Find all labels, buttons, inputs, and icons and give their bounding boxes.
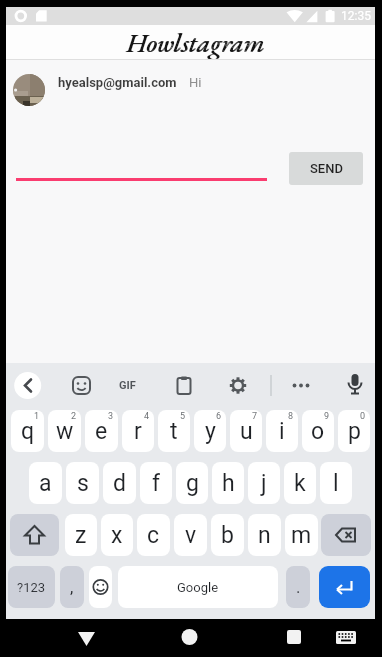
staticText: n	[258, 522, 271, 549]
button[interactable]: q	[11, 410, 44, 452]
staticText: 6	[216, 411, 222, 422]
button[interactable]: c	[137, 514, 170, 556]
staticText: hyealsp@gmail.com	[58, 75, 177, 90]
button[interactable]: y	[194, 410, 226, 452]
button[interactable]: t	[158, 410, 190, 452]
staticText: 3	[108, 411, 114, 422]
staticText: g	[186, 470, 199, 497]
staticText: d	[113, 470, 126, 497]
staticText: 5	[180, 411, 186, 422]
button[interactable]: ?123	[8, 566, 55, 608]
staticText: 1	[34, 411, 40, 422]
staticText: Howlstagram	[127, 25, 266, 60]
button[interactable]: SEND	[289, 152, 363, 185]
button[interactable]: r	[122, 410, 154, 452]
staticText: v	[185, 522, 197, 549]
staticText: x	[111, 522, 123, 549]
button[interactable]: l	[320, 462, 352, 504]
staticText: 4	[144, 411, 150, 422]
button[interactable]	[89, 566, 112, 608]
button[interactable]: w	[48, 410, 81, 452]
button[interactable]: Google	[118, 566, 278, 608]
button[interactable]: g	[176, 462, 208, 504]
button[interactable]: a	[29, 462, 62, 504]
staticText: 8	[288, 411, 294, 422]
button[interactable]	[170, 372, 197, 399]
staticText: 2	[71, 411, 77, 422]
button[interactable]	[321, 514, 371, 556]
staticText: p	[348, 418, 361, 445]
staticText: 9	[324, 411, 330, 422]
button[interactable]	[341, 372, 368, 399]
button[interactable]	[10, 514, 59, 556]
staticText: f	[152, 470, 160, 497]
button[interactable]	[13, 74, 45, 106]
button[interactable]: v	[174, 514, 207, 556]
staticText: m	[291, 522, 312, 549]
staticText: SEND	[310, 161, 343, 176]
button[interactable]: b	[211, 514, 244, 556]
button[interactable]: hyealsp@gmail.com	[58, 75, 202, 90]
button[interactable]: j	[248, 462, 280, 504]
button[interactable]: d	[103, 462, 136, 504]
staticText: c	[147, 522, 160, 549]
button[interactable]: o	[302, 410, 334, 452]
button[interactable]: k	[284, 462, 316, 504]
button[interactable]	[287, 372, 314, 399]
staticText: q	[21, 418, 35, 445]
staticText: GIF	[119, 379, 136, 392]
staticText: 7	[252, 411, 258, 422]
staticText: ?123	[17, 580, 46, 595]
button[interactable]: p	[338, 410, 370, 452]
button[interactable]	[71, 631, 103, 653]
staticText: t	[170, 418, 178, 445]
button[interactable]: e	[85, 410, 118, 452]
staticText: l	[333, 470, 339, 497]
button[interactable]: i	[266, 410, 298, 452]
staticText: i	[279, 418, 285, 445]
button[interactable]: .	[286, 566, 310, 608]
button[interactable]: x	[101, 514, 133, 556]
button[interactable]	[224, 372, 251, 399]
staticText: 12:35	[341, 9, 371, 23]
staticText: y	[205, 418, 216, 445]
staticText: s	[77, 470, 89, 497]
staticText: w	[56, 418, 74, 445]
button[interactable]	[14, 372, 41, 399]
button[interactable]	[334, 625, 360, 651]
button[interactable]	[68, 372, 95, 399]
staticText: b	[221, 522, 234, 549]
staticText: Google	[177, 580, 219, 595]
button[interactable]: n	[248, 514, 281, 556]
staticText: ,	[70, 577, 74, 597]
button[interactable]: z	[65, 514, 97, 556]
staticText: o	[311, 418, 325, 445]
staticText: e	[95, 418, 108, 445]
staticText: Hi	[189, 75, 202, 90]
staticText: r	[134, 418, 142, 445]
button[interactable]: h	[212, 462, 244, 504]
button[interactable]	[319, 566, 370, 608]
staticText: z	[75, 522, 87, 549]
staticText: a	[39, 470, 52, 497]
staticText: k	[294, 470, 306, 497]
button[interactable]: f	[140, 462, 172, 504]
button[interactable]	[279, 623, 309, 651]
staticText: .	[296, 577, 301, 597]
button[interactable]: s	[66, 462, 99, 504]
staticText: h	[222, 470, 235, 497]
button[interactable]	[174, 626, 205, 653]
staticText: 0	[360, 411, 366, 422]
staticText: j	[261, 470, 267, 497]
staticText: Howlstagram	[126, 25, 265, 60]
button[interactable]: u	[230, 410, 262, 452]
staticText: u	[240, 418, 253, 445]
button[interactable]: ,	[60, 566, 84, 608]
button[interactable]	[113, 372, 146, 399]
button[interactable]: m	[285, 514, 318, 556]
